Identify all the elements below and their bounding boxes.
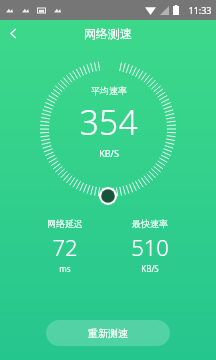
staticText: 72 xyxy=(52,232,78,262)
staticText: 354 xyxy=(79,99,138,145)
staticText: 网络延迟 xyxy=(47,218,83,229)
staticText: 平均速率 xyxy=(91,85,127,96)
button[interactable]: Back xyxy=(0,20,26,46)
staticText: 网络测速 xyxy=(84,26,132,41)
staticText: 510 xyxy=(131,232,169,262)
staticText: 重新测速 xyxy=(88,327,128,340)
staticText: 最快速率 xyxy=(132,218,168,229)
staticText: KB/S xyxy=(141,263,159,274)
staticText: ms xyxy=(59,263,71,274)
staticText: KB/S xyxy=(99,147,119,159)
staticText: 11:33 xyxy=(188,4,212,16)
button[interactable]: 重新测速 xyxy=(46,320,170,346)
